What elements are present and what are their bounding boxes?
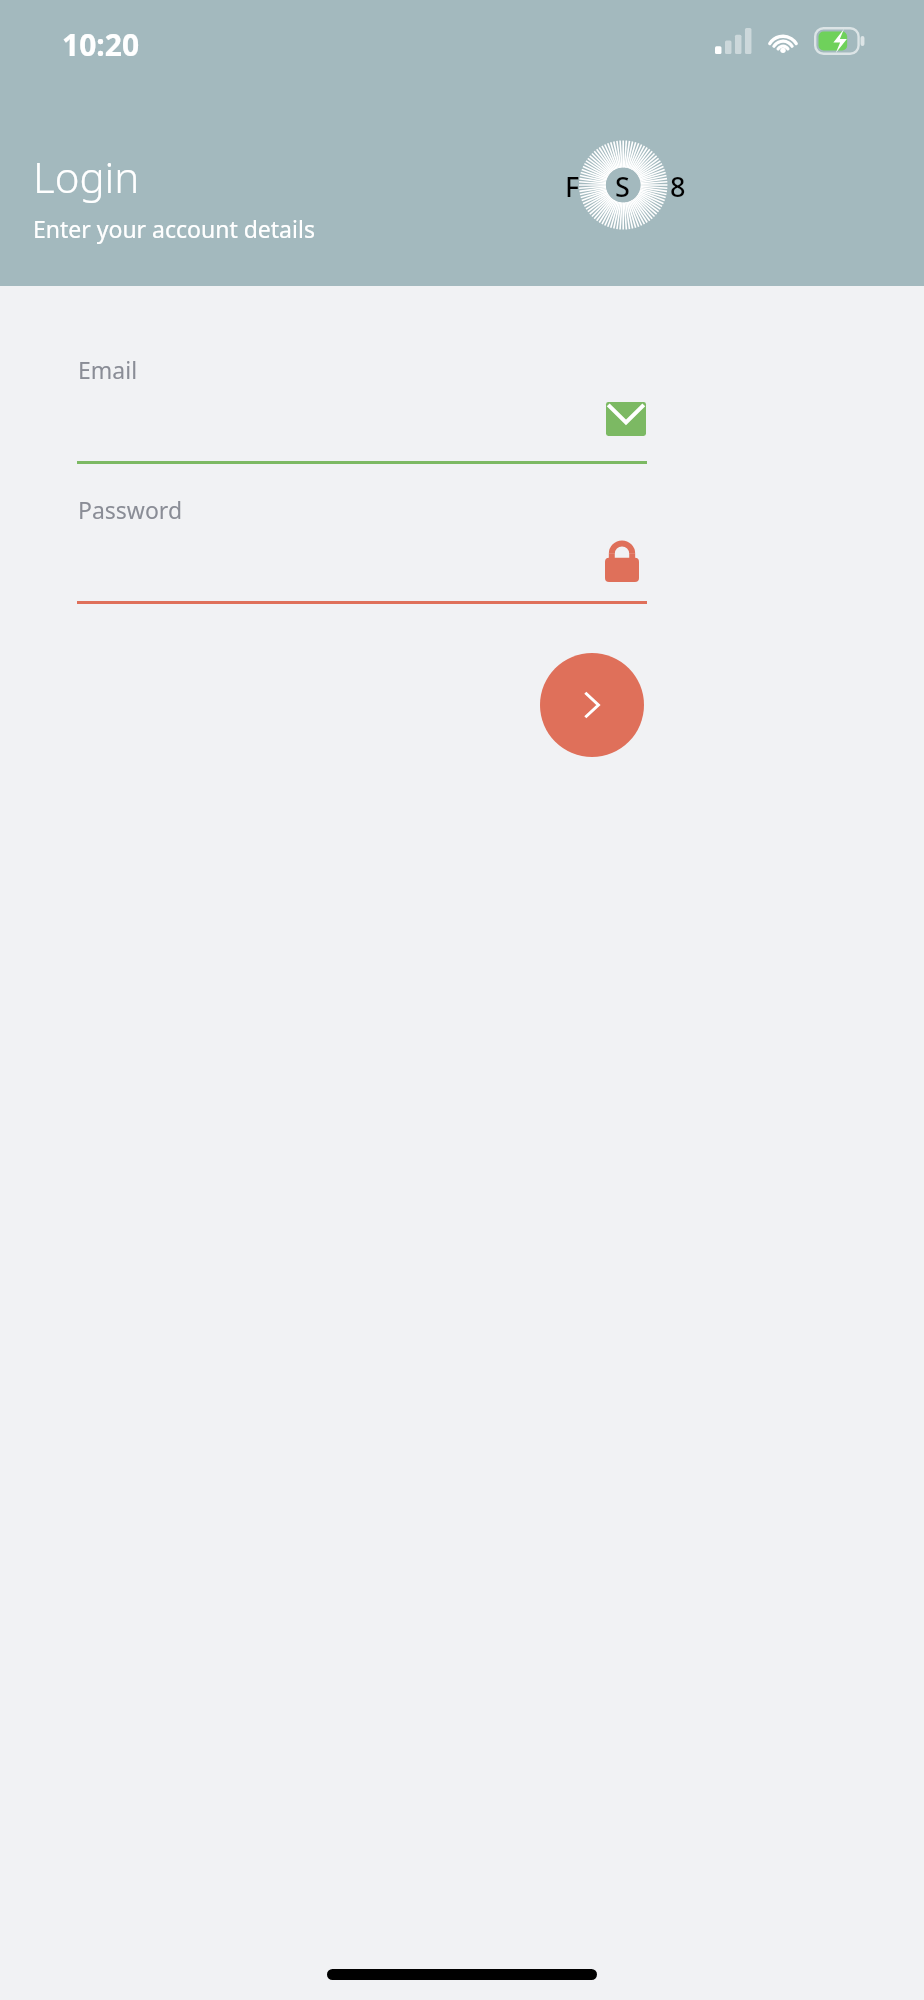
- staticText: Enter your account details: [33, 213, 315, 244]
- staticText: Login: [33, 148, 140, 205]
- staticText: Password: [78, 494, 183, 525]
- button[interactable]: [77, 386, 647, 464]
- button[interactable]: Continue: [540, 653, 644, 757]
- staticText: Email: [78, 354, 138, 385]
- staticText: S: [615, 168, 630, 205]
- staticText: 10:20: [62, 24, 140, 65]
- staticText: F: [565, 168, 580, 205]
- button[interactable]: [77, 526, 647, 604]
- staticText: 8: [670, 168, 686, 205]
